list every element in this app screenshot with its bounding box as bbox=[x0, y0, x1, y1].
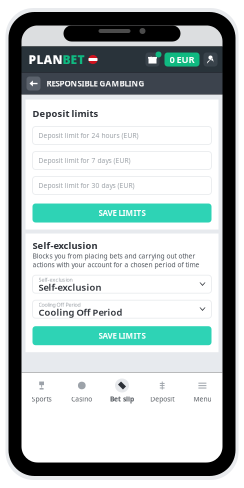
staticText: Sports bbox=[32, 394, 52, 403]
button[interactable]: Back bbox=[26, 76, 40, 90]
staticText: Self-exclusion bbox=[38, 281, 101, 293]
staticText: Self-exclusion bbox=[38, 276, 72, 283]
button[interactable]: Deposit bbox=[142, 372, 182, 462]
staticText: Self-exclusion bbox=[32, 239, 97, 252]
staticText: Deposit limit for 24 hours (EUR) bbox=[38, 131, 138, 140]
button[interactable]: Deposit limit for 30 days (EUR) bbox=[32, 176, 211, 194]
button[interactable]: Account bbox=[203, 52, 217, 66]
staticText: Blocks you from placing bets and carryin… bbox=[32, 251, 199, 269]
button[interactable]: Sports bbox=[21, 372, 62, 462]
button[interactable]: Bet slip bbox=[102, 372, 142, 462]
button[interactable]: Deposit limit for 24 hours (EUR) bbox=[32, 126, 211, 144]
button[interactable]: Casino bbox=[62, 372, 102, 462]
button[interactable]: SAVE LIMITS bbox=[32, 326, 211, 345]
staticText: SAVE LIMITS bbox=[98, 330, 145, 341]
staticText: RESPONSIBLE GAMBLING bbox=[46, 78, 144, 89]
staticText: SAVE LIMITS bbox=[98, 208, 145, 218]
staticText: Cooling Off Period bbox=[38, 301, 80, 308]
button[interactable]: SAVE LIMITS bbox=[32, 203, 211, 222]
staticText: Menu bbox=[193, 394, 211, 403]
staticText: Deposit limits bbox=[32, 107, 98, 120]
staticText: Deposit bbox=[150, 394, 174, 403]
button[interactable]: Menu bbox=[182, 372, 222, 462]
button[interactable]: Promotions bbox=[144, 52, 160, 66]
button[interactable]: 0 EUR bbox=[164, 52, 199, 66]
button[interactable]: Self-exclusion bbox=[32, 275, 211, 293]
button[interactable]: PLAN bbox=[28, 51, 97, 67]
staticText: Casino bbox=[71, 394, 92, 403]
staticText: BET bbox=[62, 51, 84, 67]
staticText: PLAN bbox=[28, 51, 62, 67]
staticText: Deposit limit for 7 days (EUR) bbox=[38, 156, 130, 165]
staticText: 0 EUR bbox=[169, 53, 194, 66]
button[interactable]: Deposit limit for 7 days (EUR) bbox=[32, 151, 211, 169]
button[interactable]: Cooling Off Period bbox=[32, 300, 211, 318]
staticText: Cooling Off Period bbox=[38, 306, 122, 318]
staticText: Bet slip bbox=[110, 394, 134, 403]
staticText: Deposit limit for 30 days (EUR) bbox=[38, 181, 134, 190]
